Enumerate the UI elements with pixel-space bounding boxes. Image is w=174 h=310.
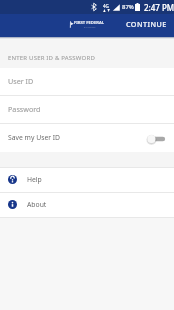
button[interactable]: Save my User ID [0,124,174,152]
staticText: Help [27,175,42,184]
button[interactable]: About [0,193,174,217]
staticText: User ID [8,76,34,86]
button[interactable]: User ID [0,68,174,95]
button[interactable]: Help [0,168,174,192]
staticText: FIRST FEDERAL [74,20,105,26]
button[interactable]: Password [0,96,174,123]
staticText: ENTER USER ID & PASSWORD [8,54,95,62]
staticText: 87% [122,3,134,11]
staticText: About [27,200,47,209]
staticText: Save my User ID [8,133,61,142]
staticText: 2:47 PM [144,2,174,13]
staticText: Password [8,104,41,114]
staticText: CONTINUE [126,19,167,29]
button[interactable]: CONTINUE [119,14,174,34]
staticText: 4G [103,3,109,9]
staticText: S A V I N G S [84,26,96,29]
